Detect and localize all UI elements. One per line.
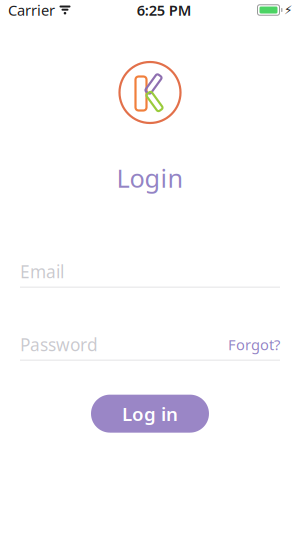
button[interactable]: Log in: [91, 395, 209, 433]
staticText: Carrier: [8, 0, 55, 20]
button[interactable]: Forgot?: [228, 335, 280, 354]
staticText: Password: [20, 333, 98, 356]
staticText: Login: [116, 161, 183, 195]
staticText: Forgot?: [228, 335, 280, 354]
staticText: Log in: [122, 401, 178, 426]
staticText: 6:25 PM: [137, 0, 192, 20]
staticText: Email: [20, 260, 64, 283]
staticText: ⚡︎: [284, 3, 292, 17]
